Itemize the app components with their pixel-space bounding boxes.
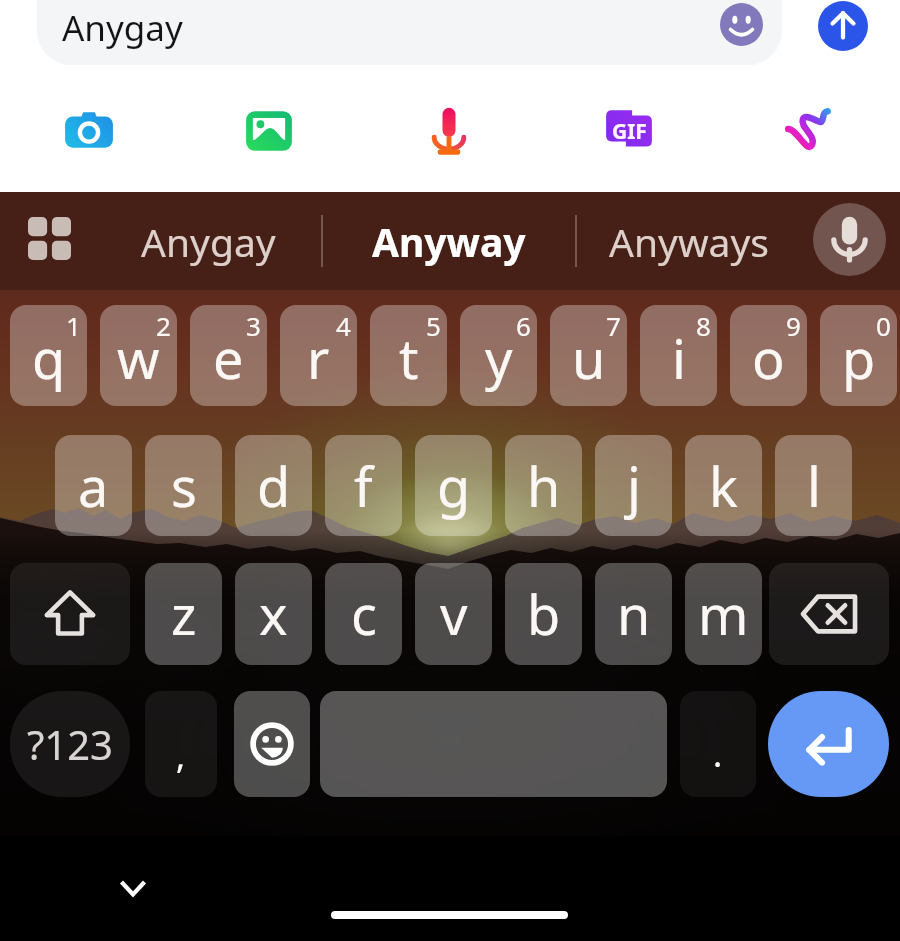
button[interactable]: Enter [768, 691, 889, 797]
button[interactable]: q [10, 305, 87, 406]
button[interactable] [37, 0, 782, 65]
button[interactable]: Anygay [96, 192, 321, 290]
staticText: t [399, 321, 419, 395]
staticText: p [842, 321, 876, 395]
button[interactable]: Hide keyboard [98, 858, 168, 928]
button[interactable]: z [145, 563, 222, 665]
button[interactable]: r [280, 305, 357, 406]
button[interactable]: Space [320, 691, 667, 797]
staticText: k [709, 449, 738, 523]
staticText: 6 [516, 308, 531, 343]
staticText: . [713, 731, 723, 777]
staticText: 8 [696, 308, 711, 343]
button[interactable]: u [550, 305, 627, 406]
button[interactable]: Camera [52, 94, 126, 168]
button[interactable]: Period [680, 691, 756, 797]
staticText: ?123 [27, 717, 113, 771]
button[interactable]: Open toolbar [13, 202, 85, 274]
staticText: d [257, 449, 291, 523]
staticText: u [572, 321, 606, 395]
staticText: e [213, 321, 244, 395]
staticText: o [752, 321, 785, 395]
button[interactable]: Shift [10, 563, 130, 665]
staticText: g [437, 449, 471, 523]
staticText: 4 [336, 308, 351, 343]
staticText: s [171, 449, 197, 523]
button[interactable]: n [595, 563, 672, 665]
staticText: y [485, 321, 513, 395]
button[interactable]: Gallery [232, 94, 306, 168]
button[interactable]: c [325, 563, 402, 665]
button[interactable]: e [190, 305, 267, 406]
button[interactable]: l [775, 435, 852, 536]
button[interactable]: Symbols [10, 691, 130, 797]
staticText: Anyways [609, 215, 770, 268]
button[interactable]: y [460, 305, 537, 406]
button[interactable]: Emoji [234, 691, 310, 797]
button[interactable]: t [370, 305, 447, 406]
staticText: 2 [156, 308, 171, 343]
staticText: , [176, 733, 186, 779]
staticText: 3 [246, 308, 261, 343]
staticText: v [440, 577, 468, 651]
staticText: c [351, 577, 377, 651]
button[interactable]: b [505, 563, 582, 665]
button[interactable]: v [415, 563, 492, 665]
staticText: Anygay [62, 4, 183, 52]
staticText: 0 [876, 308, 891, 343]
button[interactable]: Emoji picker [720, 3, 763, 46]
button[interactable]: Comma [145, 691, 217, 797]
staticText: h [527, 449, 561, 523]
button[interactable]: Backspace [769, 563, 889, 665]
staticText: a [78, 449, 109, 523]
staticText: l [807, 449, 821, 523]
button[interactable]: Voice input [813, 203, 886, 276]
button[interactable]: a [55, 435, 132, 536]
staticText: q [32, 321, 66, 395]
staticText: 5 [426, 308, 441, 343]
staticText: j [627, 449, 641, 523]
button[interactable]: p [820, 305, 897, 406]
button[interactable]: Stickers [772, 94, 846, 168]
staticText: n [617, 577, 651, 651]
button[interactable]: m [685, 563, 762, 665]
staticText: 7 [606, 308, 621, 343]
button[interactable]: o [730, 305, 807, 406]
button[interactable]: Voice input [412, 94, 486, 168]
button[interactable]: Anyways [576, 192, 802, 290]
button[interactable]: g [415, 435, 492, 536]
staticText: w [117, 321, 160, 395]
button[interactable]: Send [818, 1, 868, 51]
staticText: f [354, 449, 373, 523]
staticText: Anyway [372, 215, 526, 268]
staticText: r [307, 321, 330, 395]
button[interactable]: k [685, 435, 762, 536]
staticText: m [698, 577, 749, 651]
button[interactable]: h [505, 435, 582, 536]
staticText: 1 [66, 308, 81, 343]
button[interactable]: w [100, 305, 177, 406]
button[interactable]: d [235, 435, 312, 536]
button[interactable]: i [640, 305, 717, 406]
staticText: b [527, 577, 561, 651]
button[interactable]: s [145, 435, 222, 536]
button[interactable]: GIF [592, 94, 666, 168]
button[interactable]: Anyway [322, 192, 575, 290]
staticText: z [171, 577, 197, 651]
button[interactable]: x [235, 563, 312, 665]
staticText: Anygay [141, 215, 276, 268]
button[interactable]: f [325, 435, 402, 536]
staticText: x [259, 577, 288, 651]
staticText: 9 [786, 308, 801, 343]
staticText: GIF [612, 117, 647, 146]
button[interactable]: j [595, 435, 672, 536]
staticText: i [672, 321, 686, 395]
